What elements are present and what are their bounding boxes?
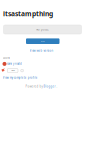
button[interactable]: sami y nadd bbox=[7, 62, 22, 65]
button[interactable]: View my complete profile bbox=[3, 76, 38, 79]
staticText: sami y nadd bbox=[7, 62, 22, 65]
button[interactable]: Home bbox=[26, 38, 59, 44]
staticText: . bbox=[56, 85, 57, 88]
staticText: Blogger bbox=[43, 85, 55, 88]
staticText: View web version bbox=[29, 49, 53, 52]
staticText: No posts. bbox=[36, 28, 49, 31]
staticText: Powered by bbox=[25, 85, 42, 88]
staticText: View my complete profile bbox=[3, 76, 38, 79]
button[interactable]: Blogger bbox=[43, 85, 55, 88]
staticText: itsastampthing bbox=[3, 9, 53, 18]
button[interactable]: Follow bbox=[7, 69, 18, 72]
button[interactable]: View web version bbox=[29, 49, 53, 52]
staticText: Home bbox=[41, 40, 45, 42]
staticText: about me bbox=[3, 57, 10, 59]
staticText: Follow bbox=[11, 70, 15, 71]
button[interactable]: Followers bbox=[21, 69, 23, 72]
